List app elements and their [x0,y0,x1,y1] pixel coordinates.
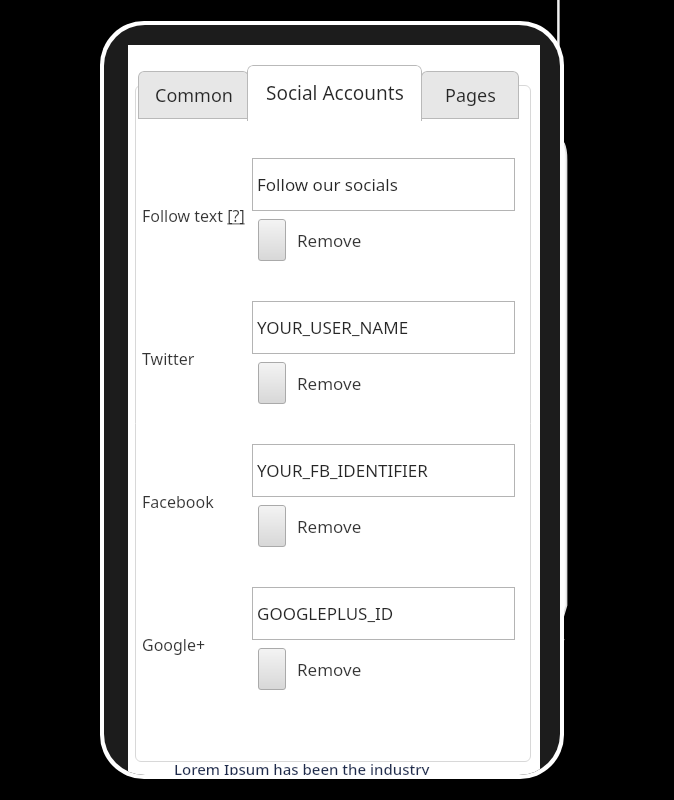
staticText: GOOGLEPLUS_ID [257,602,394,625]
button[interactable]: Remove [258,362,362,404]
staticText: Twitter [142,348,195,370]
staticText: Pages [445,83,496,108]
button[interactable]: GOOGLEPLUS_ID [252,587,515,640]
other: Remove [258,505,286,547]
staticText: Follow text [?] [142,205,245,227]
staticText: YOUR_USER_NAME [257,316,409,339]
button[interactable]: Social Accounts [247,65,422,121]
staticText: YOUR_FB_IDENTIFIER [257,459,428,482]
button[interactable]: Remove [258,648,362,690]
other: Remove [258,219,286,261]
staticText: Remove [297,372,362,395]
button[interactable]: Remove [258,219,362,261]
button[interactable]: Common [138,71,249,119]
staticText: Common [155,83,233,108]
other: Remove [258,362,286,404]
staticText: Remove [297,658,362,681]
button[interactable]: Pages [421,71,519,119]
button[interactable]: Remove [258,505,362,547]
button[interactable]: YOUR_USER_NAME [252,301,515,354]
button[interactable]: YOUR_FB_IDENTIFIER [252,444,515,497]
staticText: Remove [297,515,362,538]
staticText: Social Accounts [266,80,404,106]
other: Remove [258,648,286,690]
staticText: Remove [297,229,362,252]
staticText: Lorem Ipsum has been the industry [174,759,430,775]
staticText: Facebook [142,491,214,513]
button[interactable]: Follow our socials [252,158,515,211]
staticText: Google+ [142,634,206,656]
staticText: Follow our socials [257,173,398,196]
